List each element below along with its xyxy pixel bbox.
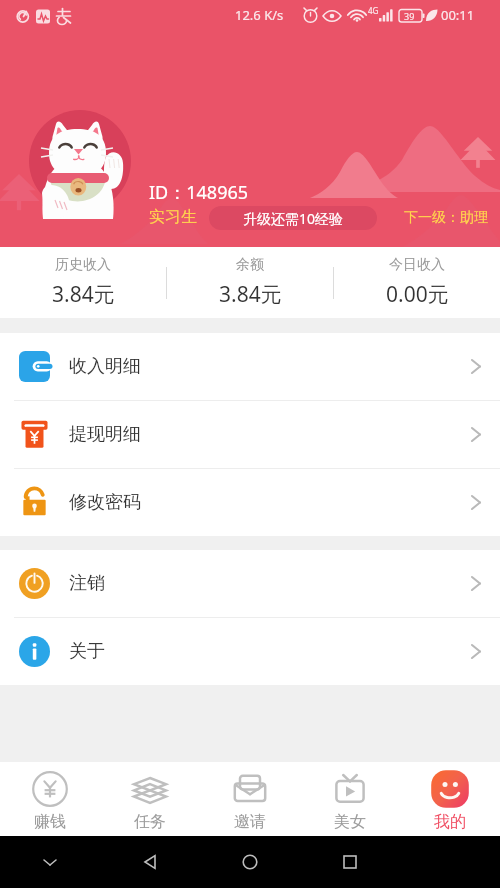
staticText: 收入明细 [69, 355, 141, 378]
other: Back [140, 852, 160, 872]
staticText: 提现明细 [69, 423, 141, 446]
staticText: 今日收入 [389, 256, 445, 274]
staticText: 4G [368, 5, 379, 16]
button[interactable]: 收入明细 [0, 333, 500, 400]
staticText: 实习生 [149, 207, 197, 227]
staticText: 3.84元 [52, 280, 115, 309]
staticText: 余额 [236, 256, 264, 274]
button[interactable]: Avatar [29, 110, 131, 212]
staticText: 邀请 [234, 812, 266, 832]
button[interactable]: 注销 [0, 550, 500, 617]
button[interactable]: 我的 [400, 762, 500, 836]
button[interactable]: 修改密码 [0, 469, 500, 536]
staticText: 升级还需10经验 [243, 209, 344, 228]
other: Recents [340, 852, 360, 872]
other: Hide keyboard [40, 852, 60, 872]
button[interactable]: 赚钱 [0, 762, 100, 836]
button[interactable]: 邀请 [200, 762, 300, 836]
button[interactable]: 关于 [0, 618, 500, 685]
staticText: 美女 [334, 812, 366, 832]
staticText: 任务 [134, 812, 166, 832]
staticText: 历史收入 [55, 256, 111, 274]
staticText: 3.84元 [219, 280, 282, 309]
staticText: 我的 [434, 812, 466, 832]
button[interactable]: 历史收入 [0, 256, 166, 309]
staticText: 修改密码 [69, 491, 141, 514]
button[interactable]: 提现明细 [0, 401, 500, 468]
button[interactable]: 升级还需10经验 [209, 206, 377, 230]
staticText: 下一级：助理 [404, 209, 488, 227]
other: Home [240, 852, 260, 872]
staticText: 注销 [69, 572, 105, 595]
staticText: 0.00元 [386, 280, 449, 309]
button[interactable]: 任务 [100, 762, 200, 836]
staticText: 关于 [69, 640, 105, 663]
button[interactable]: 今日收入 [334, 256, 500, 309]
staticText: 赚钱 [34, 812, 66, 832]
button[interactable]: 余额 [167, 256, 333, 309]
staticText: 39 [404, 10, 415, 22]
button[interactable]: 美女 [300, 762, 400, 836]
staticText: 00:11 [441, 6, 475, 24]
staticText: ID：148965 [149, 180, 249, 205]
staticText: 12.6 K/s [235, 6, 284, 24]
